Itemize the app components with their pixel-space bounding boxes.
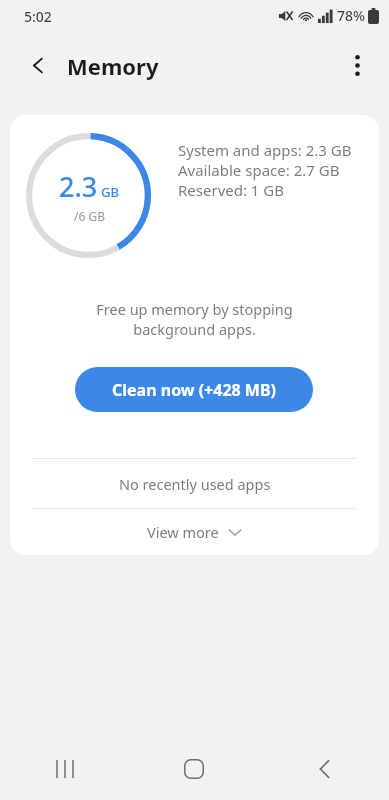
staticText: Memory <box>67 51 159 81</box>
button[interactable]: Back <box>18 45 58 85</box>
staticText: No recently used apps <box>119 474 271 494</box>
staticText: System and apps: 2.3 GB <box>178 140 352 160</box>
button[interactable]: Recent apps <box>0 738 129 800</box>
staticText: Available space: 2.7 GB <box>178 160 340 180</box>
button[interactable]: Home <box>129 738 259 800</box>
staticText: 2.3 <box>59 168 98 205</box>
staticText: /6 GB <box>74 208 105 224</box>
staticText: Free up memory by stopping background ap… <box>10 299 379 339</box>
button[interactable]: Back <box>259 738 389 800</box>
staticText: 5:02 <box>24 7 52 26</box>
button[interactable]: No recently used apps <box>10 459 379 508</box>
button[interactable]: More options <box>337 45 377 85</box>
staticText: Clean now (+428 MB) <box>112 379 277 401</box>
button[interactable]: View more <box>10 509 379 555</box>
staticText: 78% <box>337 6 365 25</box>
staticText: Reserved: 1 GB <box>178 180 285 200</box>
button[interactable]: Clean now (+428 MB) <box>75 367 313 412</box>
staticText: GB <box>101 183 119 201</box>
staticText: View more <box>147 522 219 542</box>
